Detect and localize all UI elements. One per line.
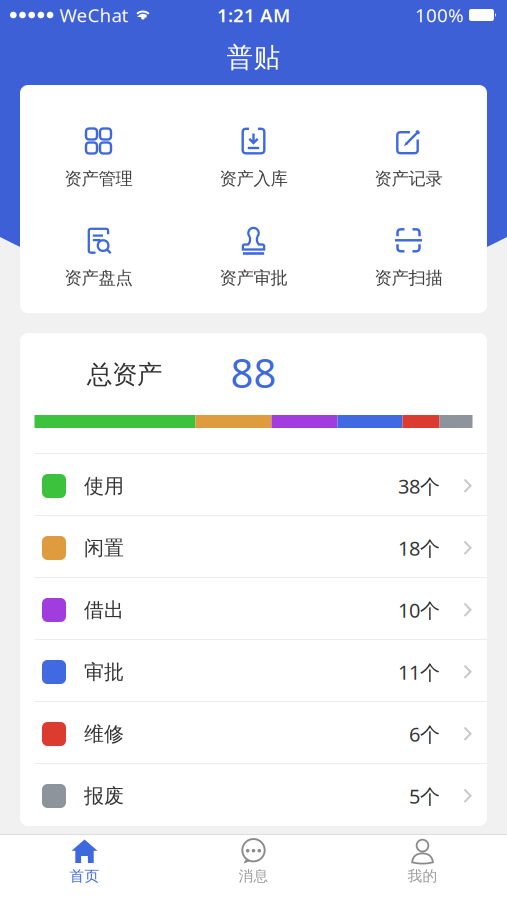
staticText: 资产入库 (219, 168, 287, 189)
staticText: 报废 (84, 784, 124, 808)
staticText: 闲置 (84, 536, 124, 560)
staticText: 普贴 (226, 41, 280, 74)
staticText: 使用 (84, 474, 124, 498)
staticText: 6个 (409, 721, 440, 747)
staticText: 借出 (84, 598, 124, 622)
staticText: 18个 (398, 535, 440, 561)
button[interactable]: 资产扫描 (331, 225, 486, 289)
staticText: 资产扫描 (374, 267, 442, 289)
staticText: 审批 (84, 660, 124, 684)
button[interactable]: 资产入库 (176, 126, 331, 189)
staticText: 88 (230, 346, 276, 399)
button[interactable]: 资产盘点 (21, 225, 176, 289)
staticText: 1:21 AM (217, 3, 290, 27)
button[interactable]: 报废 (20, 763, 487, 825)
staticText: 资产盘点 (64, 267, 132, 289)
button[interactable]: 资产管理 (21, 126, 176, 189)
staticText: 我的 (407, 867, 437, 885)
button[interactable]: 维修 (20, 701, 487, 763)
button[interactable]: 借出 (20, 577, 487, 639)
staticText: 总资产 (87, 359, 162, 390)
staticText: 资产审批 (219, 267, 287, 289)
staticText: 38个 (398, 473, 440, 499)
staticText: 首页 (69, 867, 99, 885)
staticText: 100% (415, 3, 464, 27)
staticText: 5个 (409, 783, 440, 809)
button[interactable]: 首页 (0, 835, 169, 900)
button[interactable]: 我的 (338, 835, 507, 900)
staticText: WeChat (59, 3, 128, 27)
staticText: 10个 (398, 597, 440, 623)
button[interactable]: 消息 (169, 835, 338, 900)
button[interactable]: 闲置 (20, 515, 487, 577)
button[interactable]: 资产审批 (176, 225, 331, 289)
staticText: 资产记录 (374, 168, 442, 189)
staticText: 11个 (398, 659, 440, 685)
staticText: 消息 (238, 867, 268, 885)
staticText: 资产管理 (64, 168, 132, 189)
button[interactable]: 资产记录 (331, 126, 486, 189)
button[interactable]: 使用 (20, 453, 487, 515)
staticText: 维修 (84, 722, 124, 746)
button[interactable]: 审批 (20, 639, 487, 701)
